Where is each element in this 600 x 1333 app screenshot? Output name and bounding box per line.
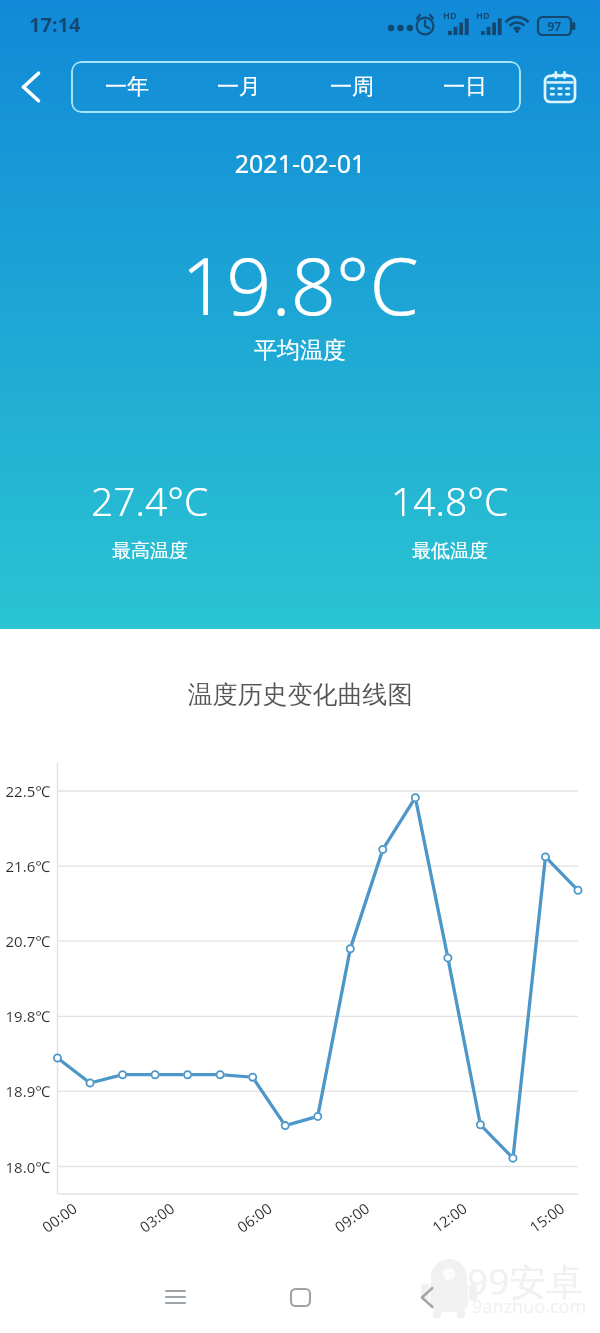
staticText: 99安卓 [467, 1255, 584, 1306]
button[interactable]: 一年 [71, 61, 183, 113]
staticText: 最低温度 [412, 539, 488, 563]
button[interactable]: Recents [151, 1273, 199, 1321]
staticText: 一月 [217, 73, 261, 101]
staticText: 2021-02-01 [0, 146, 600, 180]
staticText: 9anzhuo.com [472, 1294, 587, 1319]
staticText: 一年 [105, 73, 149, 101]
staticText: 一日 [443, 73, 487, 101]
staticText: 27.4°C [91, 474, 209, 527]
button[interactable]: Home [276, 1273, 324, 1321]
staticText: 一周 [330, 73, 374, 101]
button[interactable]: 一周 [295, 61, 408, 113]
button[interactable]: Calendar [537, 64, 583, 110]
staticText: 最高温度 [112, 539, 188, 563]
staticText: 19.8°C [0, 231, 600, 339]
staticText: 平均温度 [0, 336, 600, 365]
staticText: 17:14 [29, 11, 81, 38]
button[interactable]: Back [6, 62, 55, 111]
button[interactable]: Back [403, 1273, 451, 1321]
staticText: 14.8°C [391, 474, 509, 527]
button[interactable]: 一日 [408, 61, 521, 113]
staticText: 温度历史变化曲线图 [0, 679, 600, 710]
button[interactable]: 一月 [183, 61, 295, 113]
